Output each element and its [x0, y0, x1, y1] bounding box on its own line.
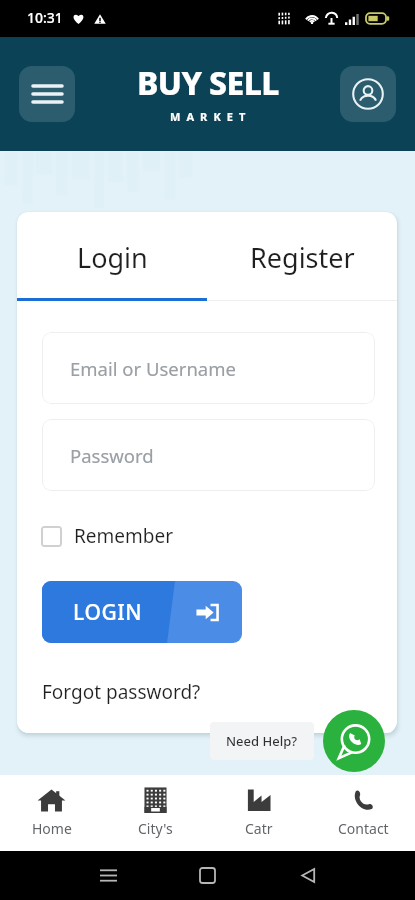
button[interactable]: Home: [0, 775, 103, 851]
button[interactable]: Forgot password?: [42, 679, 201, 705]
staticText: LOGIN: [73, 598, 143, 627]
staticText: Catr: [245, 819, 273, 838]
button[interactable]: Remember: [39, 521, 176, 551]
staticText: Email or Username: [70, 356, 236, 381]
staticText: Login: [77, 239, 148, 276]
button[interactable]: Login: [17, 212, 207, 298]
staticText: Need Help?: [226, 732, 298, 750]
button[interactable]: Catr: [207, 775, 311, 851]
staticText: BUY SELL: [137, 61, 279, 105]
button[interactable]: LOGIN: [42, 581, 242, 643]
button[interactable]: Home: [200, 868, 215, 883]
button[interactable]: City's: [103, 775, 207, 851]
button[interactable]: Menu: [19, 66, 75, 122]
staticText: Home: [32, 819, 72, 838]
button[interactable]: Account: [340, 66, 396, 122]
button[interactable]: Contact: [311, 775, 415, 851]
staticText: Register: [250, 239, 355, 276]
button[interactable]: Recents: [100, 869, 117, 882]
button[interactable]: Back: [301, 868, 316, 883]
staticText: City's: [138, 819, 173, 838]
staticText: Remember: [74, 523, 174, 549]
button[interactable]: Email or Username: [42, 332, 375, 404]
staticText: M A R K E T: [170, 109, 247, 124]
staticText: Contact: [338, 819, 389, 838]
button[interactable]: Password: [42, 419, 375, 491]
button[interactable]: Need Help?: [210, 722, 314, 760]
staticText: Password: [70, 443, 154, 468]
button[interactable]: Register: [207, 212, 397, 298]
button[interactable]: Chat on WhatsApp: [323, 710, 385, 772]
staticText: 10:31: [27, 8, 63, 27]
